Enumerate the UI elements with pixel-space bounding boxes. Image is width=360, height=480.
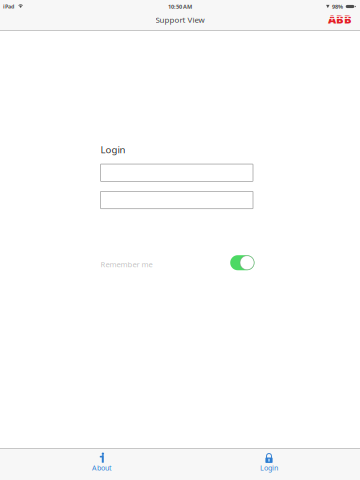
button[interactable]: About [64,448,140,480]
staticText: ABB [328,12,352,27]
staticText: 98% [332,3,343,10]
button[interactable]: Login [231,448,307,480]
button[interactable]: ABB [325,9,356,29]
staticText: Support View [155,14,204,25]
staticText: Remember me [100,259,152,269]
button[interactable]: Remember me [230,255,254,270]
staticText: iPad [3,3,14,10]
staticText: Login [100,143,125,156]
staticText: 10:50 AM [168,3,192,10]
staticText: Login [260,463,278,472]
staticText: About [92,463,112,472]
